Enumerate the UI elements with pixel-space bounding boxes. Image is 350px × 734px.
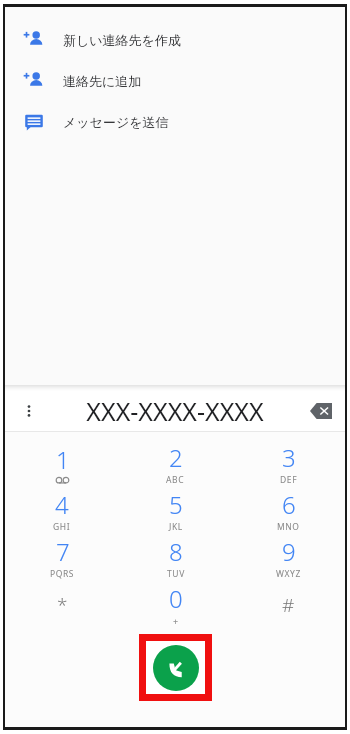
staticText: 2 [169, 441, 183, 474]
button[interactable]: メッセージを送信 [5, 101, 345, 142]
button[interactable]: Backspace [297, 391, 345, 431]
staticText: 0 [169, 582, 183, 615]
button[interactable]: 新しい連絡先を作成 [5, 19, 345, 60]
staticText: # [282, 592, 295, 618]
staticText: JKL [169, 521, 183, 533]
button[interactable]: 2 [119, 440, 232, 487]
staticText: + [173, 615, 179, 627]
staticText: ABC [166, 474, 185, 486]
staticText: DEF [280, 474, 298, 486]
staticText: メッセージを送信 [63, 114, 169, 130]
staticText: 9 [282, 535, 296, 568]
button[interactable]: Call [153, 645, 199, 691]
staticText: TUV [167, 568, 185, 580]
button[interactable]: 1 [5, 440, 119, 487]
button[interactable]: 0 [119, 581, 232, 628]
button[interactable]: 3 [232, 440, 345, 487]
staticText: 4 [55, 488, 69, 521]
button[interactable]: # [232, 581, 345, 628]
staticText: WXYZ [276, 568, 301, 580]
button[interactable]: 9 [232, 534, 345, 581]
staticText: 8 [169, 535, 183, 568]
staticText: XXX-XXXX-XXXX [53, 394, 297, 428]
staticText: 1 [56, 443, 70, 476]
staticText: 6 [282, 488, 296, 521]
button[interactable]: 6 [232, 487, 345, 534]
button[interactable]: 5 [119, 487, 232, 534]
staticText: 7 [56, 535, 70, 568]
staticText: 連絡先に追加 [63, 73, 142, 89]
staticText: PQRS [50, 568, 75, 580]
button[interactable]: * [5, 581, 119, 628]
staticText: 新しい連絡先を作成 [63, 32, 181, 48]
staticText: MNO [277, 521, 300, 533]
button[interactable]: 連絡先に追加 [5, 60, 345, 101]
staticText: GHI [53, 521, 71, 533]
staticText: 3 [282, 441, 296, 474]
staticText: 5 [169, 488, 183, 521]
staticText: * [57, 592, 68, 618]
button[interactable]: More options [5, 391, 53, 431]
button[interactable]: 8 [119, 534, 232, 581]
button[interactable]: 7 [5, 534, 119, 581]
button[interactable]: 4 [5, 487, 119, 534]
